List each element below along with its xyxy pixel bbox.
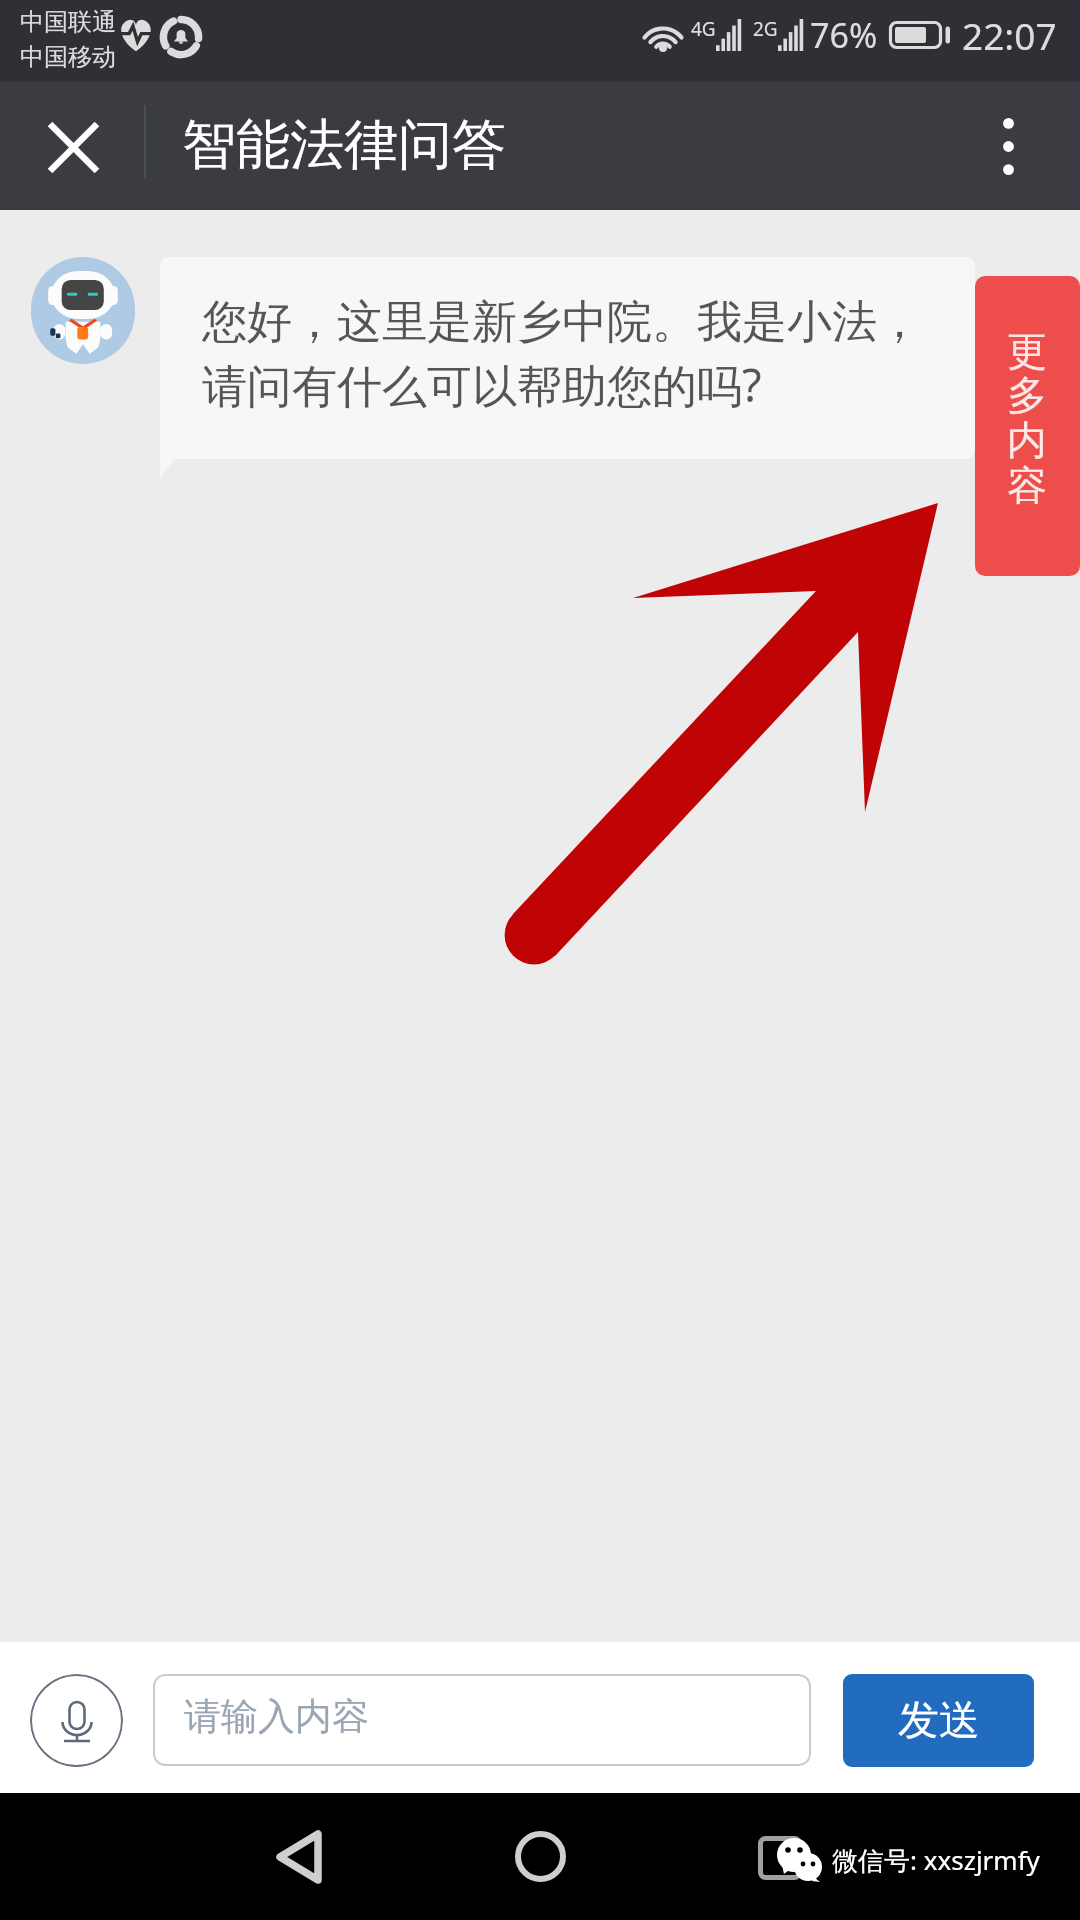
staticText: 2G [753,16,778,42]
staticText: 76% [810,12,878,58]
button[interactable]: 请输入内容 [153,1674,811,1766]
staticText: 中国联通 中国移动 [20,7,116,72]
button[interactable]: 发送 [843,1674,1034,1767]
staticText: 4G [691,16,716,42]
button[interactable]: Recent apps [738,1793,822,1920]
button[interactable]: 更 多 内 容 [975,276,1080,576]
button[interactable]: More options [960,82,1060,210]
button[interactable]: Voice input [30,1674,123,1767]
staticText: 微信号: xxszjrmfy [832,1842,1040,1878]
button[interactable]: Back [254,1793,344,1920]
staticText: 智能法律问答 [182,111,506,179]
staticText: 您好，这里是新乡中院。我是小法， 请问有什么可以帮助您的吗? [202,294,922,415]
staticText: 请输入内容 [184,1693,369,1740]
staticText: 22:07 [962,10,1057,60]
staticText: 发送 [898,1695,980,1747]
button[interactable]: Close [0,82,144,210]
staticText: 更 多 内 容 [1007,326,1047,511]
button[interactable]: Home [495,1793,585,1920]
